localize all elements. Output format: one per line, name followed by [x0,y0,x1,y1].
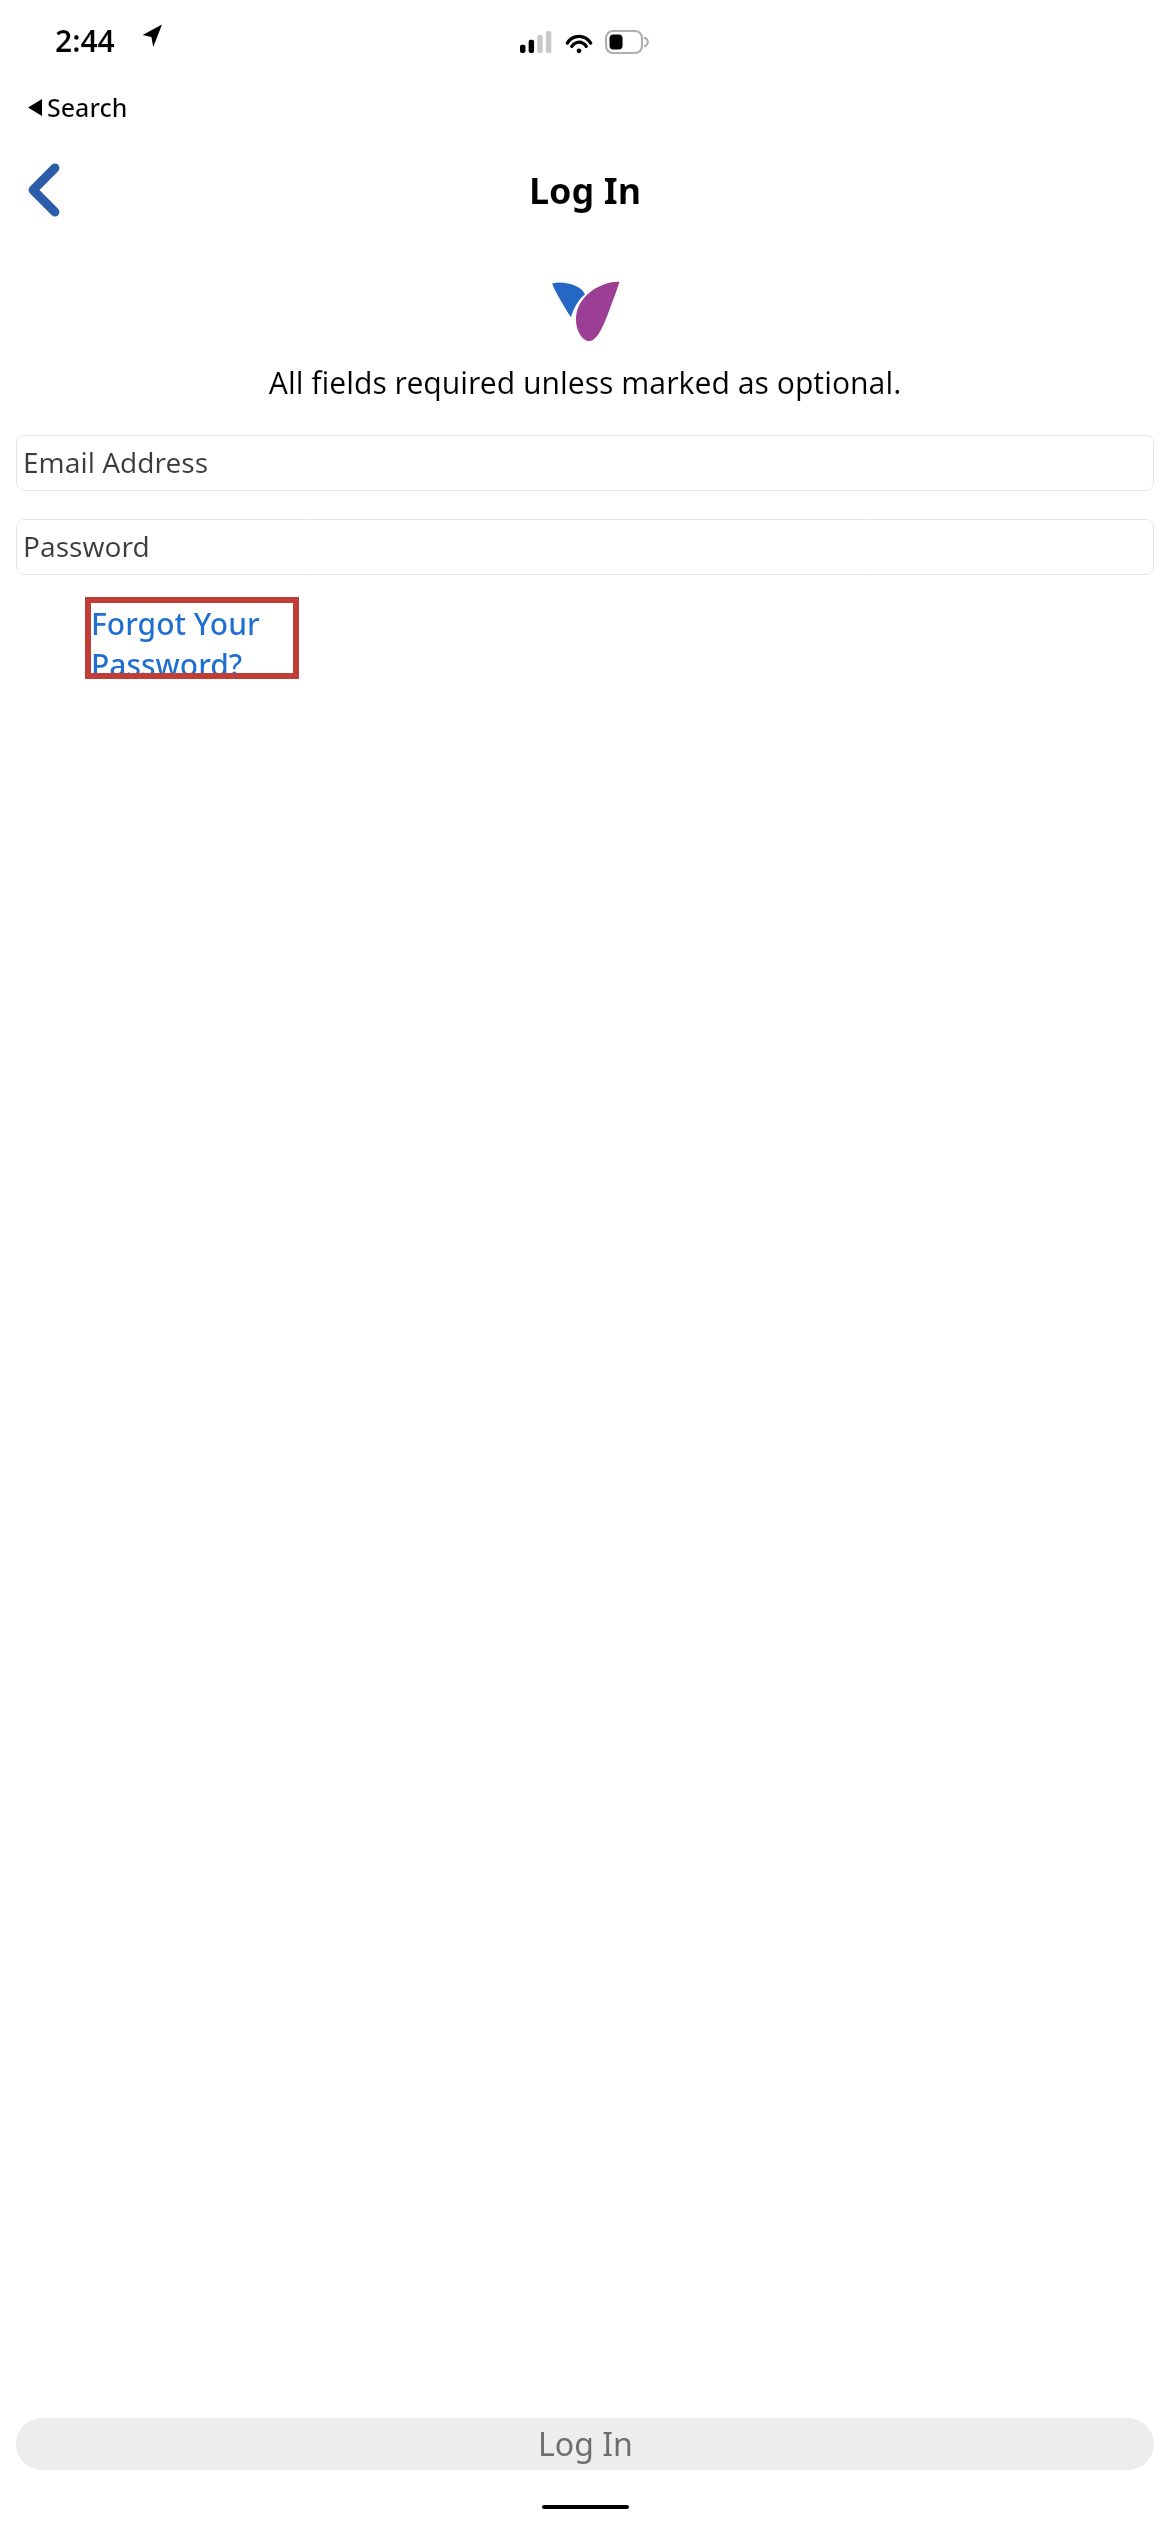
staticText: Log In [538,2422,633,2466]
button[interactable]: Password [16,519,1154,575]
staticText: Email Address [23,443,209,481]
staticText: Search [47,90,128,124]
button[interactable]: Back [8,154,80,226]
button[interactable]: Search [24,88,132,126]
button[interactable]: Log In [16,2418,1154,2470]
staticText: Log In [529,166,642,215]
button[interactable]: Forgot Your Password? [91,603,293,673]
staticText: 2:44 [55,20,115,61]
staticText: Forgot Your Password? [91,603,293,673]
button[interactable]: Email Address [16,435,1154,491]
staticText: Password [23,527,150,565]
staticText: All fields required unless marked as opt… [24,362,1146,403]
